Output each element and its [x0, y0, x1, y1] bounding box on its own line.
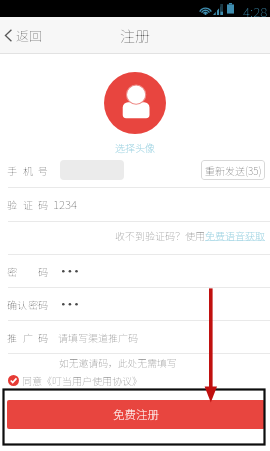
button[interactable]: 免费注册	[7, 400, 265, 429]
staticText: 推	[7, 330, 17, 344]
button[interactable]: 免费语音获取	[205, 228, 265, 242]
staticText: 4:28	[243, 1, 268, 18]
staticText: 免费注册	[113, 406, 159, 423]
button[interactable]: 重新发送(35)	[201, 160, 265, 180]
staticText: 广	[23, 330, 33, 344]
staticText: 如无邀请码，此处无需填写	[59, 356, 177, 370]
staticText: 选择头像	[115, 140, 155, 154]
staticText: 证	[23, 197, 33, 211]
button[interactable]: 选择头像	[0, 72, 270, 154]
staticText: 1234	[53, 196, 77, 213]
staticText: 免费语音获取	[205, 228, 265, 242]
button[interactable]: 同意《叮当用户使用协议》	[0, 373, 270, 387]
staticText: 注册	[120, 25, 151, 47]
staticText: 机	[23, 163, 33, 177]
staticText: 验	[7, 197, 17, 211]
staticText: 认	[17, 297, 27, 311]
staticText: 确	[7, 297, 17, 311]
staticText: 码	[38, 330, 48, 344]
staticText: 码	[38, 297, 48, 311]
staticText: 手	[7, 163, 17, 177]
staticText: 同意《叮当用户使用协议》	[22, 373, 142, 387]
staticText: 返回	[16, 26, 43, 45]
staticText: 码	[38, 197, 48, 211]
staticText: 请填写渠道推广码	[58, 330, 138, 344]
staticText: 重新发送(35)	[205, 163, 262, 177]
staticText: 收不到验证码？使用	[115, 228, 205, 242]
staticText: 号	[38, 163, 48, 177]
staticText: 码	[38, 264, 48, 278]
staticText: 密	[7, 264, 17, 278]
staticText: 密	[28, 297, 38, 311]
button[interactable]: 返回	[0, 20, 53, 51]
